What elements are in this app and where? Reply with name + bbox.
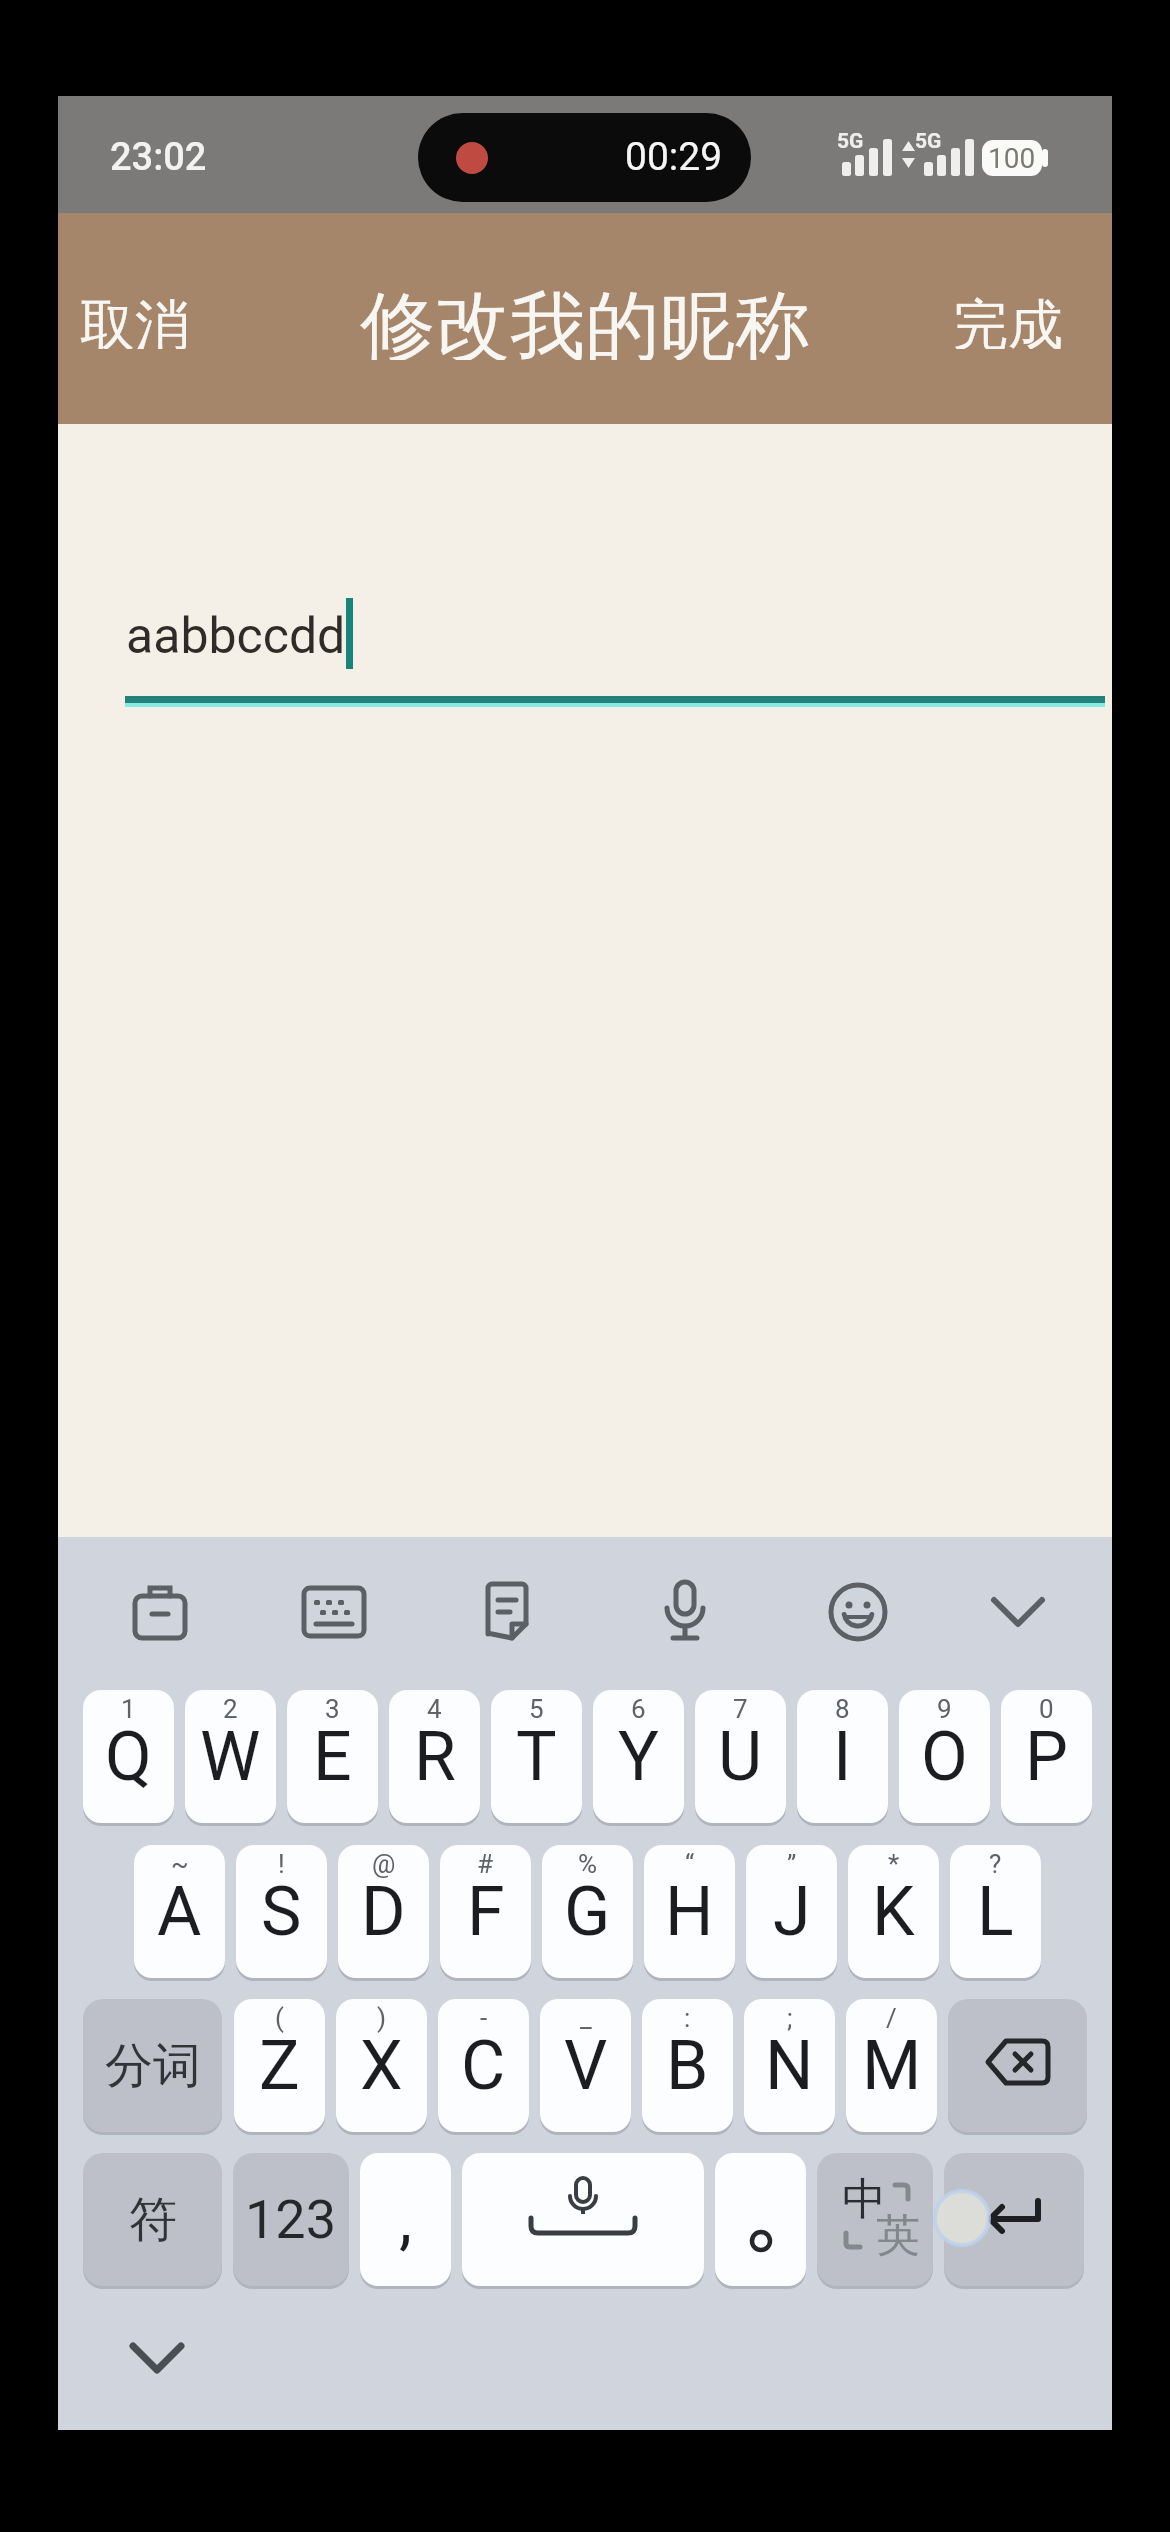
staticText: F <box>467 1872 505 1952</box>
staticText: “ <box>685 1849 695 1879</box>
button[interactable] <box>744 1999 835 2132</box>
staticText: 8 <box>835 1694 850 1724</box>
staticText: J <box>773 1872 811 1952</box>
staticText: : <box>684 2003 691 2033</box>
button[interactable] <box>817 2153 933 2286</box>
staticText: ~ <box>171 1849 189 1879</box>
staticText: 4 <box>427 1694 442 1724</box>
button[interactable] <box>134 1845 225 1978</box>
staticText: B <box>666 2026 709 2106</box>
button[interactable] <box>797 1690 888 1823</box>
staticText: W <box>200 1717 261 1797</box>
button[interactable] <box>695 1690 786 1823</box>
staticText: N <box>765 2026 814 2106</box>
staticText: M <box>862 2026 922 2106</box>
button[interactable] <box>389 1690 480 1823</box>
staticText: , <box>399 2181 412 2258</box>
staticText: 00:29 <box>625 134 723 180</box>
button[interactable] <box>491 1690 582 1823</box>
staticText: Y <box>618 1717 659 1797</box>
button[interactable]: 123 <box>233 2153 349 2286</box>
staticText: Z <box>259 2026 300 2106</box>
staticText: @ <box>372 1849 396 1879</box>
button[interactable] <box>234 1999 325 2132</box>
staticText: T <box>516 1717 557 1797</box>
button[interactable] <box>661 1580 709 1644</box>
button[interactable]: 分词 <box>83 1999 222 2132</box>
button[interactable] <box>846 1999 937 2132</box>
button[interactable] <box>338 1845 429 1978</box>
button[interactable] <box>540 1999 631 2132</box>
button[interactable]: 完成 <box>943 291 1063 349</box>
staticText: 中 <box>842 2172 886 2226</box>
staticText: 2 <box>223 1694 238 1724</box>
button[interactable] <box>440 1845 531 1978</box>
staticText: ) <box>377 2003 387 2033</box>
staticText: P <box>1025 1717 1068 1797</box>
button[interactable] <box>336 1999 427 2132</box>
staticText: S <box>261 1872 302 1952</box>
staticText: U <box>718 1717 763 1797</box>
button[interactable] <box>715 2153 806 2286</box>
staticText: ” <box>787 1849 797 1879</box>
staticText: 7 <box>733 1694 748 1724</box>
button[interactable] <box>899 1690 990 1823</box>
button[interactable] <box>644 1845 735 1978</box>
staticText: R <box>414 1717 456 1797</box>
button[interactable] <box>992 1598 1044 1628</box>
button[interactable] <box>948 1999 1087 2132</box>
staticText: ? <box>989 1849 1002 1879</box>
staticText: 分词 <box>105 2036 201 2096</box>
button[interactable] <box>1001 1690 1092 1823</box>
staticText: 5G <box>915 129 942 153</box>
button[interactable] <box>83 1690 174 1823</box>
button[interactable] <box>462 2153 704 2286</box>
staticText: ( <box>275 2003 284 2033</box>
button[interactable] <box>642 1999 733 2132</box>
staticText: K <box>872 1872 915 1952</box>
staticText: 取消 <box>80 291 190 349</box>
staticText: G <box>564 1872 611 1952</box>
staticText: aabbccdd <box>126 607 346 666</box>
button[interactable] <box>593 1690 684 1823</box>
staticText: 0 <box>1039 1694 1054 1724</box>
button[interactable] <box>484 1582 534 1642</box>
staticText: ; <box>787 2003 793 2033</box>
button[interactable]: 取消 <box>80 291 210 349</box>
button[interactable] <box>746 1845 837 1978</box>
staticText: O <box>921 1717 968 1797</box>
staticText: 完成 <box>953 291 1063 349</box>
button[interactable] <box>848 1845 939 1978</box>
button[interactable] <box>130 1582 190 1642</box>
button[interactable] <box>236 1845 327 1978</box>
staticText: % <box>578 1849 598 1879</box>
button[interactable] <box>131 2344 183 2374</box>
staticText: # <box>477 1849 494 1879</box>
staticText: H <box>665 1872 714 1952</box>
button[interactable] <box>302 1586 366 1638</box>
staticText: 123 <box>245 2188 337 2251</box>
button[interactable] <box>950 1845 1041 1978</box>
staticText: D <box>361 1872 406 1952</box>
staticText: 5G <box>837 129 864 153</box>
staticText: 修改我的昵称 <box>360 280 810 360</box>
button[interactable]: , <box>360 2153 451 2286</box>
button[interactable]: 符 <box>83 2153 222 2286</box>
staticText: E <box>313 1717 352 1797</box>
button[interactable] <box>438 1999 529 2132</box>
button[interactable] <box>944 2153 1084 2286</box>
staticText: 6 <box>631 1694 646 1724</box>
staticText: A <box>157 1872 202 1952</box>
button[interactable] <box>287 1690 378 1823</box>
staticText: I <box>833 1717 852 1797</box>
button[interactable] <box>828 1582 888 1642</box>
staticText: 1 <box>121 1694 136 1724</box>
staticText: Q <box>105 1717 152 1797</box>
staticText: * <box>888 1849 900 1879</box>
staticText: L <box>977 1872 1014 1952</box>
button[interactable] <box>185 1690 276 1823</box>
button[interactable] <box>542 1845 633 1978</box>
staticText: 5 <box>529 1694 544 1724</box>
staticText: 3 <box>325 1694 340 1724</box>
staticText: 符 <box>129 2190 177 2250</box>
